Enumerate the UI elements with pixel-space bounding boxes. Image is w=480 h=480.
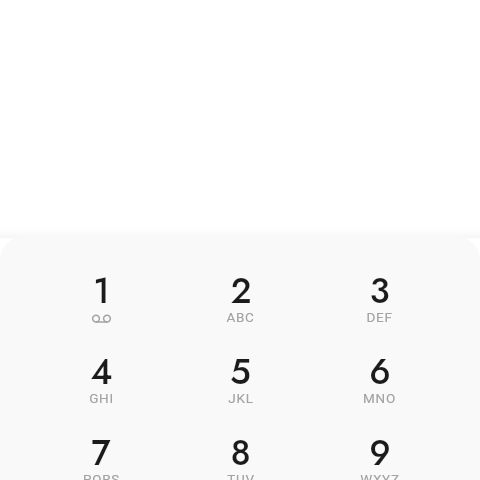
button[interactable]: 5: [171, 347, 310, 428]
staticText: 5: [230, 347, 251, 398]
staticText: 6: [369, 347, 391, 398]
staticText: ABC: [226, 309, 255, 325]
button[interactable]: 1: [31, 266, 171, 347]
staticText: PQRS: [83, 471, 120, 480]
staticText: WXYZ: [360, 471, 400, 480]
button[interactable]: 7: [31, 428, 171, 480]
staticText: 3: [369, 266, 390, 317]
staticText: 4: [90, 347, 113, 398]
staticText: MNO: [363, 390, 396, 406]
button[interactable]: 2: [171, 266, 310, 347]
button[interactable]: 6: [310, 347, 449, 428]
staticText: DEF: [366, 309, 393, 325]
staticText: TUV: [227, 471, 255, 480]
staticText: 2: [230, 266, 252, 317]
staticText: 8: [230, 428, 251, 479]
staticText: JKL: [228, 390, 254, 406]
button[interactable]: 9: [310, 428, 449, 480]
button[interactable]: 8: [171, 428, 310, 480]
staticText: GHI: [89, 390, 114, 406]
button[interactable]: 4: [31, 347, 171, 428]
staticText: 9: [369, 428, 391, 479]
staticText: 1: [93, 266, 110, 317]
button[interactable]: 3: [310, 266, 449, 347]
other: Voicemail: [92, 309, 111, 324]
staticText: 7: [91, 428, 111, 479]
